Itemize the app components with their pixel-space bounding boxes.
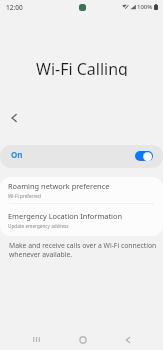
button[interactable]: Back [115, 327, 140, 350]
button[interactable]: Roaming network preference [0, 177, 163, 203]
button[interactable]: Wi-Fi Calling toggle [135, 151, 153, 161]
staticText: Emergency Location Information [8, 211, 123, 221]
button[interactable]: Recents [24, 327, 49, 350]
staticText: Wi-Fi preferred [8, 193, 41, 199]
button[interactable]: Emergency Location Information [0, 204, 163, 236]
button[interactable]: Home [70, 327, 95, 350]
button[interactable]: On [0, 145, 163, 168]
staticText: Make and receive calls over a Wi-Fi conn… [9, 241, 161, 259]
staticText: 12:00 [6, 3, 23, 12]
staticText: On [11, 149, 23, 160]
button[interactable]: Back [2, 106, 26, 130]
staticText: Wi-Fi Calling [36, 58, 128, 76]
staticText: Update emergency address [8, 223, 69, 229]
staticText: Roaming network preference [8, 181, 110, 191]
staticText: 100% [137, 3, 153, 11]
